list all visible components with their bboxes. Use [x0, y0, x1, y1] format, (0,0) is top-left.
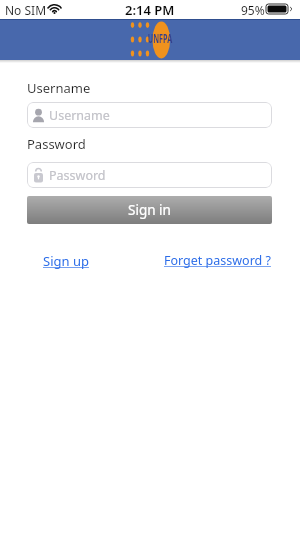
- staticText: Forget password ?: [164, 252, 271, 269]
- staticText: 95%: [241, 2, 265, 18]
- staticText: Username: [27, 79, 91, 97]
- button[interactable]: Password: [27, 162, 272, 188]
- staticText: Sign in: [128, 201, 171, 219]
- staticText: 2:14 PM: [125, 1, 175, 19]
- staticText: UNFPA: [148, 29, 172, 47]
- button[interactable]: Forget password ?: [164, 252, 271, 269]
- staticText: Password: [49, 167, 106, 184]
- staticText: Sign up: [43, 252, 89, 270]
- staticText: No SIM: [5, 2, 47, 18]
- button[interactable]: Username: [27, 102, 272, 128]
- staticText: Password: [27, 135, 86, 153]
- button[interactable]: Sign up: [43, 252, 89, 270]
- staticText: Username: [49, 107, 110, 124]
- button[interactable]: Sign in: [27, 196, 272, 224]
